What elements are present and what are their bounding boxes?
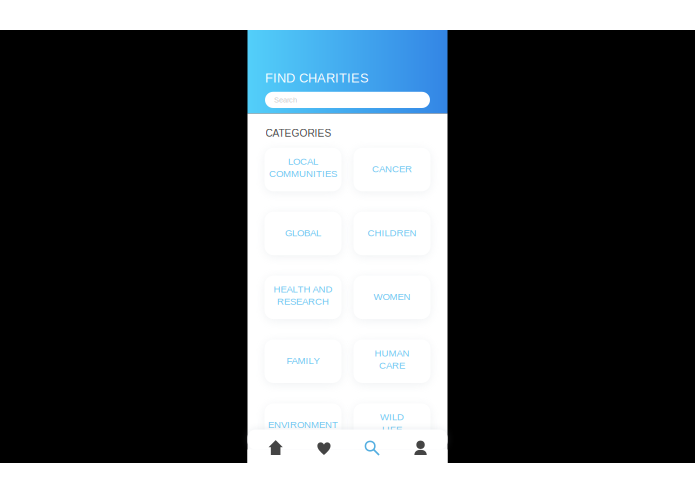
staticText: COMMUNITIES (269, 168, 337, 179)
staticText: HEALTH AND (273, 284, 332, 294)
staticText: FIND CHARITIES (265, 71, 369, 85)
staticText: FAMILY (286, 355, 319, 366)
staticText: LOCAL (288, 156, 318, 167)
staticText: HUMAN (374, 348, 409, 358)
staticText: CARE (379, 360, 405, 371)
button[interactable]: Home (251, 429, 300, 463)
staticText: WILD (380, 412, 404, 422)
button[interactable]: WILD (353, 403, 430, 447)
button[interactable]: WOMEN (353, 276, 430, 319)
button[interactable]: Search (348, 429, 396, 463)
button[interactable]: GLOBAL (264, 212, 341, 255)
button[interactable]: ENVIRONMENT (264, 403, 341, 447)
button[interactable]: Profile (396, 429, 445, 463)
button[interactable]: CHILDREN (353, 212, 430, 255)
staticText: CANCER (372, 164, 412, 174)
button[interactable]: HUMAN (353, 339, 430, 383)
button[interactable]: LOCAL (264, 148, 341, 191)
staticText: LIFE (382, 424, 402, 435)
button[interactable]: Favourites (300, 429, 348, 463)
staticText: RESEARCH (277, 296, 329, 307)
button[interactable]: CANCER (353, 148, 430, 191)
button[interactable]: FAMILY (264, 339, 341, 383)
staticText: GLOBAL (285, 227, 321, 238)
button[interactable]: Search (265, 92, 430, 108)
staticText: CATEGORIES (265, 127, 331, 139)
staticText: CHILDREN (367, 227, 416, 238)
staticText: WOMEN (373, 291, 410, 302)
staticText: ENVIRONMENT (268, 419, 338, 430)
staticText: Search (274, 96, 297, 104)
button[interactable]: HEALTH AND (264, 276, 341, 319)
